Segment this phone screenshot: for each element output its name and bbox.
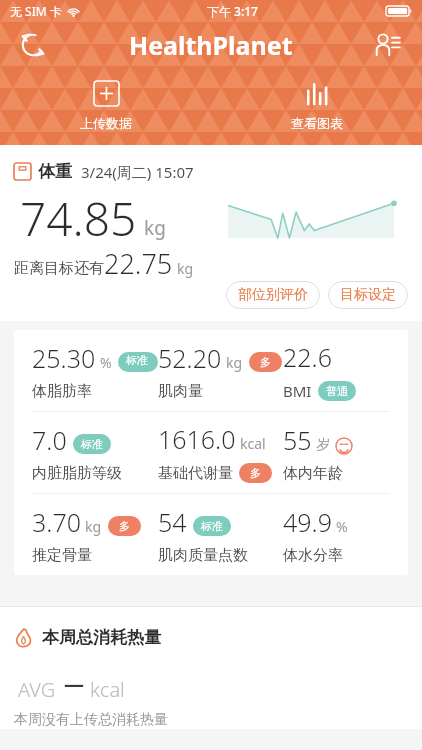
button[interactable]: 3.70 bbox=[32, 494, 158, 575]
staticText: 基础代谢量 bbox=[158, 464, 233, 483]
staticText: 标准 bbox=[201, 519, 223, 533]
staticText: 体重 bbox=[38, 161, 72, 182]
staticText: HealthPlanet bbox=[129, 28, 293, 62]
staticText: 多 bbox=[119, 519, 130, 533]
button[interactable]: Refresh bbox=[12, 24, 54, 66]
staticText: 25.30 bbox=[32, 341, 96, 375]
staticText: % bbox=[336, 517, 348, 536]
button[interactable]: 7.0 bbox=[32, 412, 158, 493]
staticText: 体脂肪率 bbox=[32, 382, 92, 401]
staticText: AVG bbox=[18, 676, 56, 703]
staticText: BMI bbox=[283, 381, 312, 401]
staticText: 55 bbox=[283, 423, 312, 457]
button[interactable]: 部位别评价 bbox=[226, 281, 320, 309]
staticText: 74.85 bbox=[20, 187, 137, 250]
staticText: 肌肉量 bbox=[158, 382, 203, 401]
staticText: — bbox=[64, 670, 84, 697]
button[interactable]: Profile bbox=[368, 24, 410, 66]
staticText: 22.6 bbox=[283, 340, 332, 374]
staticText: 多 bbox=[260, 355, 271, 369]
staticText: 目标设定 bbox=[340, 286, 396, 304]
button[interactable]: 54 bbox=[158, 494, 283, 575]
button[interactable]: 49.9 bbox=[283, 494, 408, 575]
staticText: 肌肉质量点数 bbox=[158, 546, 248, 565]
staticText: 本周没有上传总消耗热量 bbox=[14, 711, 168, 729]
button[interactable]: 22.6 bbox=[283, 330, 408, 411]
staticText: kg bbox=[85, 517, 102, 536]
staticText: kg bbox=[177, 259, 194, 278]
staticText: kg bbox=[226, 353, 243, 372]
staticText: 无 SIM 卡 bbox=[10, 3, 62, 19]
staticText: 7.0 bbox=[32, 423, 67, 457]
button[interactable]: 52.20 bbox=[158, 330, 283, 411]
staticText: % bbox=[100, 353, 112, 372]
staticText: 体内年龄 bbox=[283, 464, 343, 483]
staticText: kcal bbox=[90, 676, 125, 703]
staticText: 查看图表 bbox=[291, 115, 343, 131]
staticText: 54 bbox=[158, 505, 187, 539]
staticText: kcal bbox=[240, 434, 266, 453]
staticText: 本周总消耗热量 bbox=[42, 627, 161, 648]
staticText: 标准 bbox=[81, 437, 103, 451]
staticText: 1616.0 bbox=[158, 422, 236, 456]
button[interactable]: 目标设定 bbox=[328, 281, 408, 309]
staticText: 内脏脂肪等级 bbox=[32, 464, 122, 483]
staticText: 体水分率 bbox=[283, 546, 343, 565]
staticText: 距离目标还有 bbox=[14, 259, 104, 278]
staticText: 下午 3:17 bbox=[207, 3, 258, 19]
staticText: 22.75 bbox=[104, 245, 173, 282]
staticText: 3.70 bbox=[32, 505, 81, 539]
staticText: 上传数据 bbox=[80, 115, 132, 131]
staticText: kg bbox=[144, 215, 166, 241]
staticText: 普通 bbox=[326, 384, 348, 398]
staticText: 多 bbox=[250, 466, 261, 480]
button[interactable]: 25.30 bbox=[32, 330, 158, 411]
staticText: 49.9 bbox=[283, 505, 332, 539]
staticText: 标准 - bbox=[126, 352, 150, 372]
staticText: 岁 bbox=[316, 436, 330, 454]
button[interactable]: 查看图表 bbox=[287, 78, 347, 135]
button[interactable]: 1616.0 bbox=[158, 412, 283, 493]
staticText: 3/24(周二) 15:07 bbox=[81, 162, 194, 182]
staticText: 52.20 bbox=[158, 341, 222, 375]
button[interactable]: 55 bbox=[283, 412, 408, 493]
button[interactable]: 上传数据 bbox=[76, 77, 136, 135]
staticText: 推定骨量 bbox=[32, 546, 92, 565]
staticText: 部位别评价 bbox=[238, 286, 308, 304]
